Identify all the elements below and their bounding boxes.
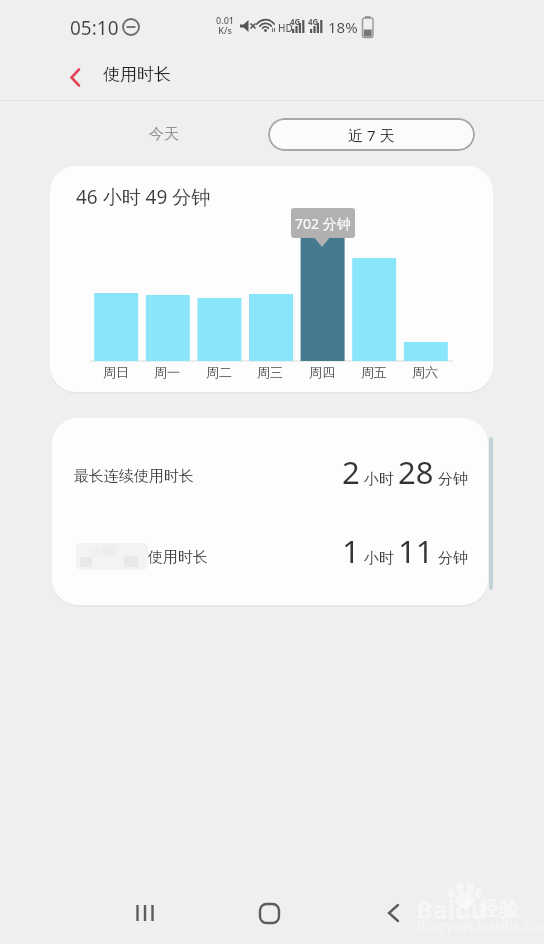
staticText: 周日 [103, 364, 129, 380]
staticText: HD [278, 21, 293, 35]
staticText: 周一 [154, 364, 180, 380]
staticText: 4G [308, 16, 319, 27]
staticText: 周三 [257, 364, 283, 380]
staticText: 分钟 [434, 468, 468, 488]
staticText: 小时 [360, 547, 398, 567]
staticText: 1 [342, 530, 360, 572]
staticText: 周五 [361, 364, 387, 380]
staticText: 702 分钟 [295, 214, 351, 233]
staticText: 分钟 [434, 547, 468, 567]
staticText: 经验 [479, 897, 519, 922]
staticText: 0.01 K/s [216, 14, 234, 36]
button[interactable] [123, 891, 167, 935]
staticText: 28 [398, 451, 434, 493]
button[interactable] [247, 891, 291, 935]
staticText: 小时 [360, 468, 398, 488]
staticText: 周二 [206, 364, 232, 380]
staticText: 4G [290, 16, 301, 27]
staticText: 使用时长 [103, 64, 171, 85]
staticText: 使用时长 [148, 548, 208, 567]
button[interactable] [371, 891, 415, 935]
staticText: 05:10 [70, 15, 119, 41]
staticText: 46 小时 49 分钟 [76, 184, 211, 210]
staticText: 11 [398, 530, 434, 572]
button[interactable]: 今天 [132, 118, 196, 151]
staticText: 2 [342, 451, 360, 493]
staticText: 周六 [412, 364, 438, 380]
staticText: 周四 [309, 364, 335, 380]
staticText: 18% [328, 17, 358, 37]
staticText: 最长连续使用时长 [74, 467, 194, 486]
button[interactable] [58, 58, 94, 94]
button[interactable]: 近 7 天 [268, 118, 475, 151]
staticText: 今天 [149, 125, 179, 144]
staticText: 近 7 天 [348, 125, 395, 145]
staticText: Baidu [416, 892, 488, 926]
